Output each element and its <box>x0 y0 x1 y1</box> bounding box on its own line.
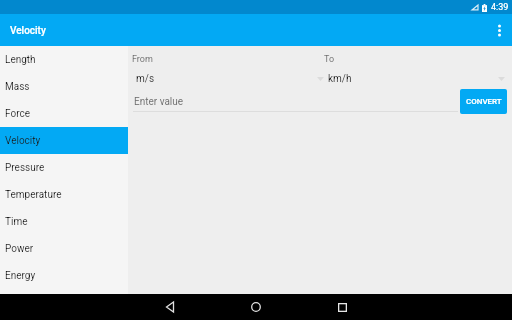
button[interactable]: CONVERT <box>460 89 507 114</box>
staticText: Mass <box>5 81 30 93</box>
button[interactable]: Enter value <box>133 89 458 112</box>
button[interactable]: From <box>130 50 325 89</box>
button[interactable]: Energy <box>0 262 128 289</box>
button[interactable]: Force <box>0 100 128 127</box>
button[interactable]: Length <box>0 46 128 73</box>
staticText: Enter value <box>134 96 184 108</box>
staticText: Temperature <box>5 189 62 201</box>
button[interactable]: Power <box>0 235 128 262</box>
staticText: Pressure <box>5 162 45 174</box>
staticText: Energy <box>5 270 36 282</box>
button[interactable]: Mass <box>0 73 128 100</box>
button[interactable]: Home <box>213 294 299 320</box>
button[interactable]: More options <box>486 14 512 46</box>
staticText: To <box>324 54 335 65</box>
button[interactable]: Temperature <box>0 181 128 208</box>
button[interactable]: Pressure <box>0 154 128 181</box>
button[interactable]: Time <box>0 208 128 235</box>
button[interactable]: Back <box>127 294 213 320</box>
staticText: 4:39 <box>491 2 509 13</box>
staticText: km/h <box>328 73 352 85</box>
staticText: Force <box>5 108 30 120</box>
staticText: Length <box>5 54 36 66</box>
staticText: Velocity <box>5 135 41 147</box>
button[interactable]: Velocity <box>0 127 128 154</box>
staticText: Power <box>5 243 34 255</box>
staticText: From <box>132 54 153 65</box>
staticText: Time <box>5 216 28 228</box>
staticText: m/s <box>136 73 155 85</box>
button[interactable]: Recent apps <box>299 294 385 320</box>
staticText: Velocity <box>10 25 46 37</box>
button[interactable]: To <box>322 50 506 89</box>
staticText: CONVERT <box>466 97 502 106</box>
